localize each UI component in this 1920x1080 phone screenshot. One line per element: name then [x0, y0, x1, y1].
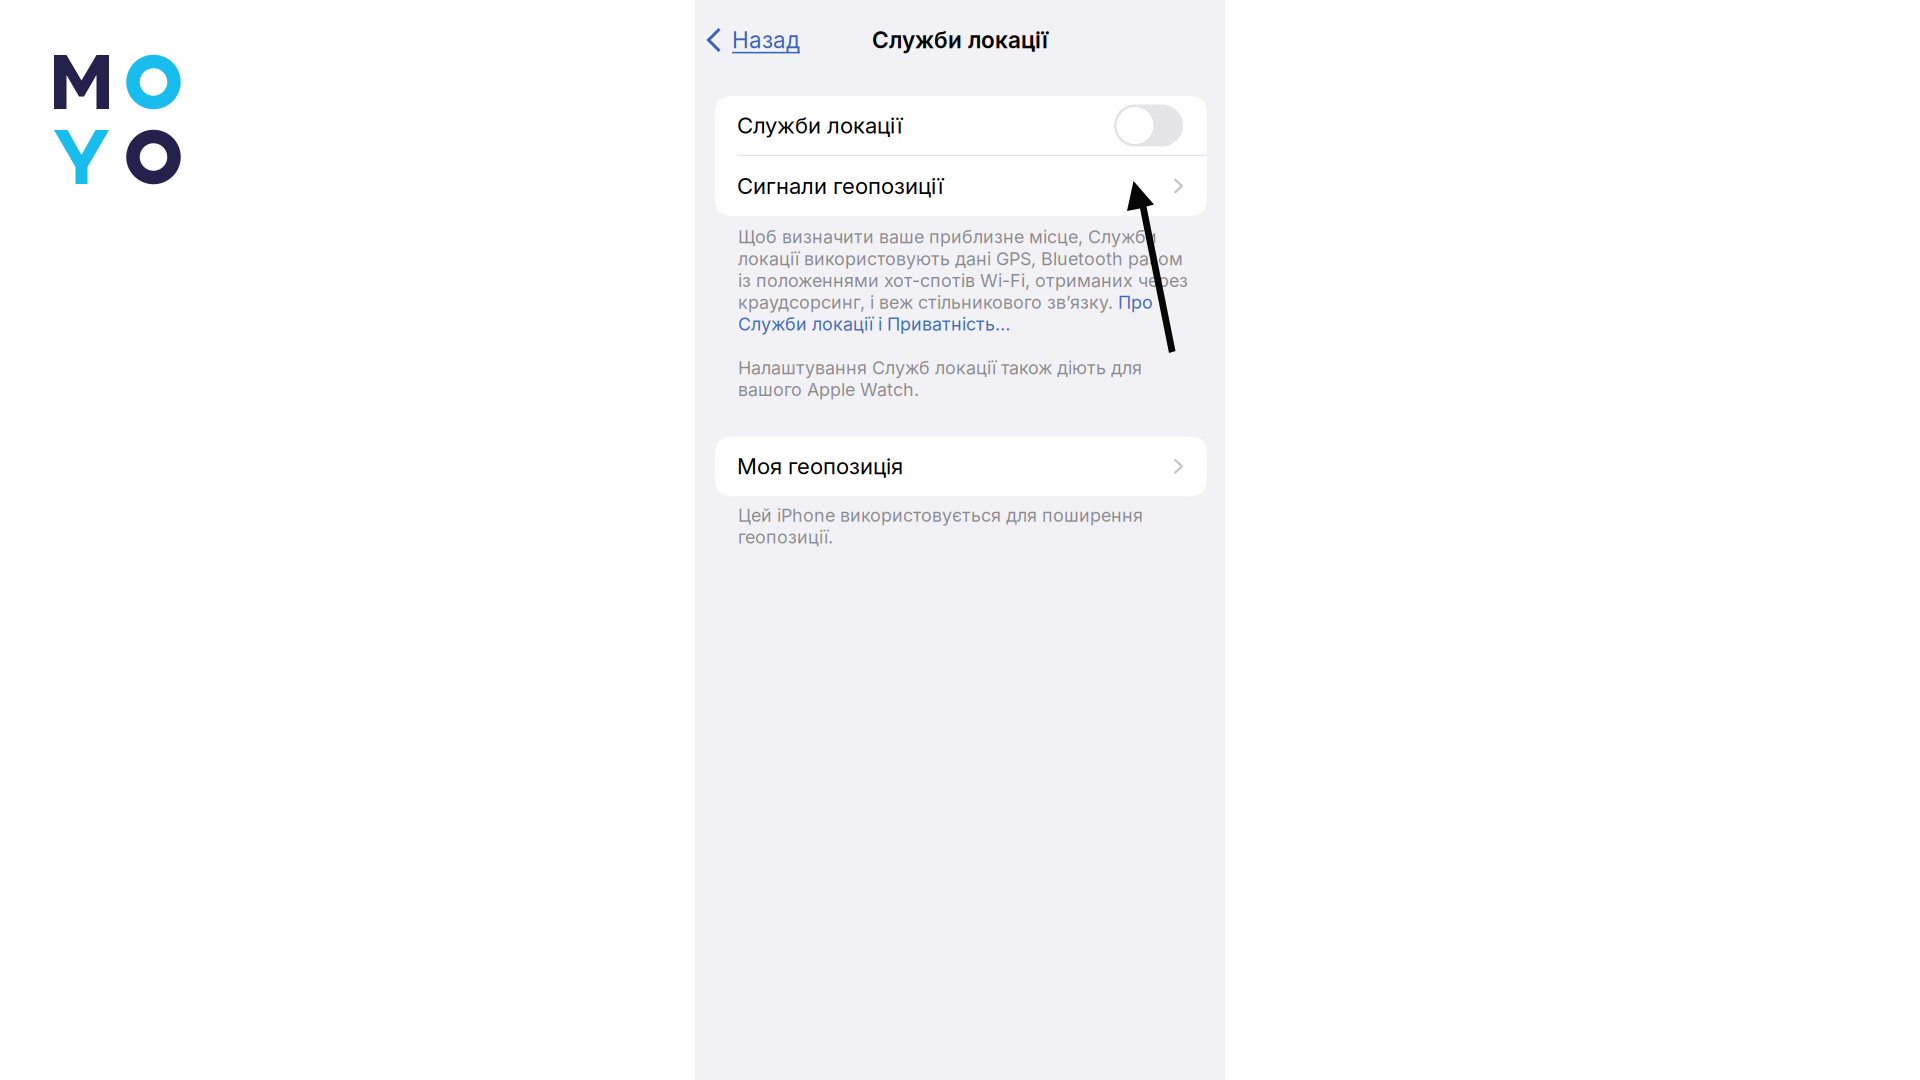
staticText: Цей iPhone використовується для поширенн…: [738, 504, 1143, 548]
staticText: Служби локації: [872, 26, 1048, 54]
button[interactable]: Сигнали геопозиції: [715, 156, 1207, 216]
button[interactable]: Моя геопозиція: [715, 436, 1207, 496]
staticText: Сигнали геопозиції: [737, 173, 943, 199]
staticText: Налаштування Служб локації також діють д…: [738, 357, 1142, 400]
staticText: Служби локації: [737, 112, 902, 139]
button[interactable]: Служби локації: [715, 96, 1207, 155]
staticText: Назад: [732, 26, 800, 54]
staticText: Моя геопозиція: [737, 453, 903, 480]
staticText: Щоб визначити ваше приблизне місце, Служ…: [738, 226, 1188, 335]
button[interactable]: Назад: [705, 19, 802, 61]
